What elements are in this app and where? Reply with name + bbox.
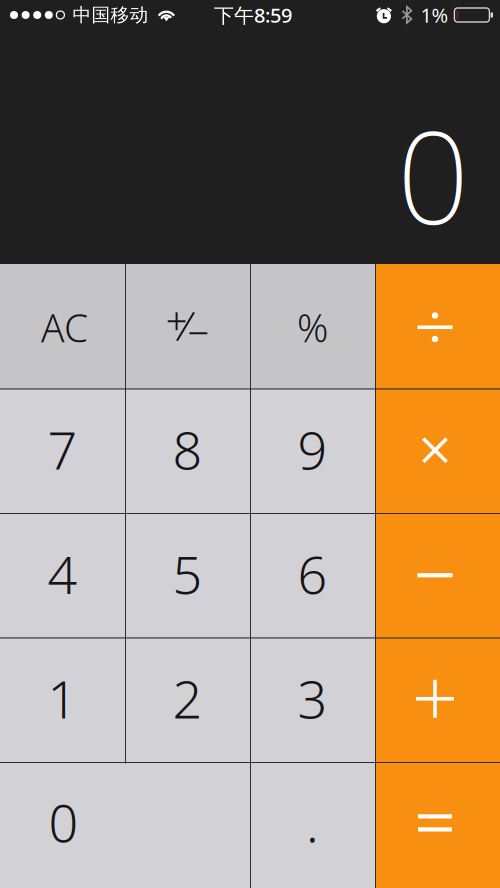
staticText: 下午8:59 (214, 2, 292, 28)
button[interactable]: % (187, 514, 312, 638)
staticText: 中国移动 (72, 3, 148, 26)
staticText: AC (41, 302, 88, 353)
staticText: 5 (172, 539, 202, 608)
button[interactable]: AC (187, 514, 312, 638)
staticText: 3 (297, 664, 327, 733)
button[interactable]: 4 (187, 514, 312, 638)
button[interactable]: 2 (187, 514, 312, 638)
staticText: % (297, 302, 328, 353)
button[interactable]: 1 (187, 514, 312, 638)
staticText: . (306, 787, 319, 857)
button[interactable]: Plus minus (187, 514, 312, 638)
staticText: 4 (47, 539, 77, 608)
staticText: 6 (297, 539, 327, 608)
button[interactable]: . (187, 513, 312, 639)
staticText: 0 (48, 787, 78, 857)
button[interactable]: 9 (187, 514, 312, 638)
button[interactable]: 7 (187, 514, 312, 638)
button[interactable]: Subtract (187, 514, 312, 638)
button[interactable]: 3 (187, 514, 312, 638)
staticText: 1% (420, 2, 448, 28)
button[interactable]: Multiply (187, 514, 312, 638)
staticText: 8 (172, 415, 202, 484)
button[interactable]: Add (187, 514, 312, 638)
staticText: 7 (47, 415, 77, 484)
button[interactable]: Divide (187, 514, 312, 638)
staticText: 2 (172, 664, 202, 733)
staticText: 9 (297, 415, 327, 484)
button[interactable]: 6 (187, 514, 312, 638)
button[interactable]: Equals (187, 513, 312, 639)
button[interactable]: 8 (187, 514, 312, 638)
staticText: 1 (47, 664, 77, 733)
button[interactable]: 5 (187, 514, 312, 638)
button[interactable]: 0 (125, 513, 375, 639)
staticText: 0 (397, 91, 469, 259)
